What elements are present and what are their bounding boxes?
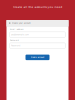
staticText: Password xyxy=(9,39,18,41)
button[interactable]: Create account xyxy=(25,55,49,60)
staticText: you@example.com xyxy=(11,33,29,36)
staticText: Password xyxy=(11,44,20,47)
staticText: Create all the accounts you need xyxy=(12,5,62,9)
staticText: Email address xyxy=(9,28,23,30)
staticText: Create your account xyxy=(12,22,31,24)
staticText: Create account xyxy=(30,56,44,59)
